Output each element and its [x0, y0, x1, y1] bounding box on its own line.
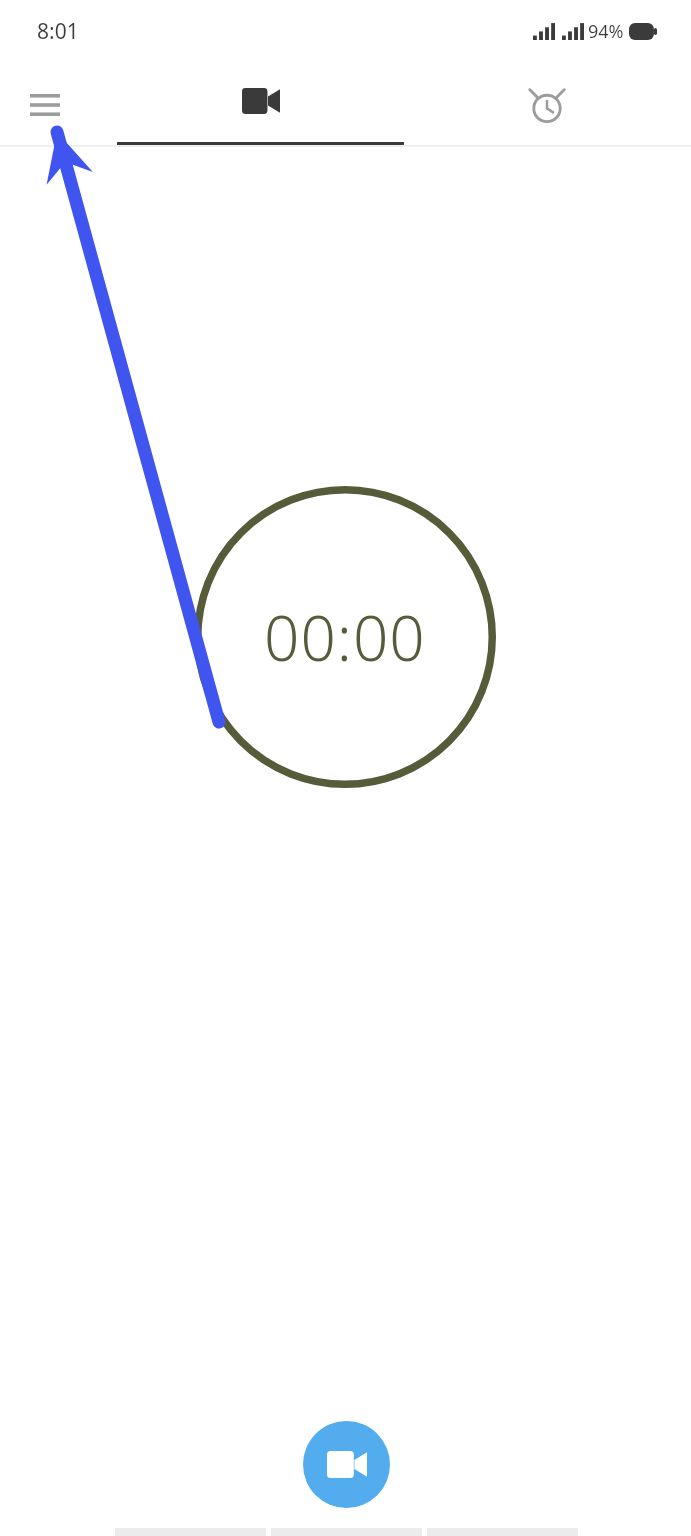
- staticText: 8:01: [37, 17, 79, 46]
- button[interactable]: 00:00: [194, 486, 496, 788]
- staticText: 94%: [588, 19, 624, 44]
- staticText: 00:00: [264, 595, 426, 679]
- button[interactable]: Recorder tab: [117, 62, 404, 146]
- button[interactable]: Start recording: [303, 1421, 390, 1508]
- button[interactable]: Alarms: [514, 72, 580, 138]
- button[interactable]: Menu: [12, 72, 78, 138]
